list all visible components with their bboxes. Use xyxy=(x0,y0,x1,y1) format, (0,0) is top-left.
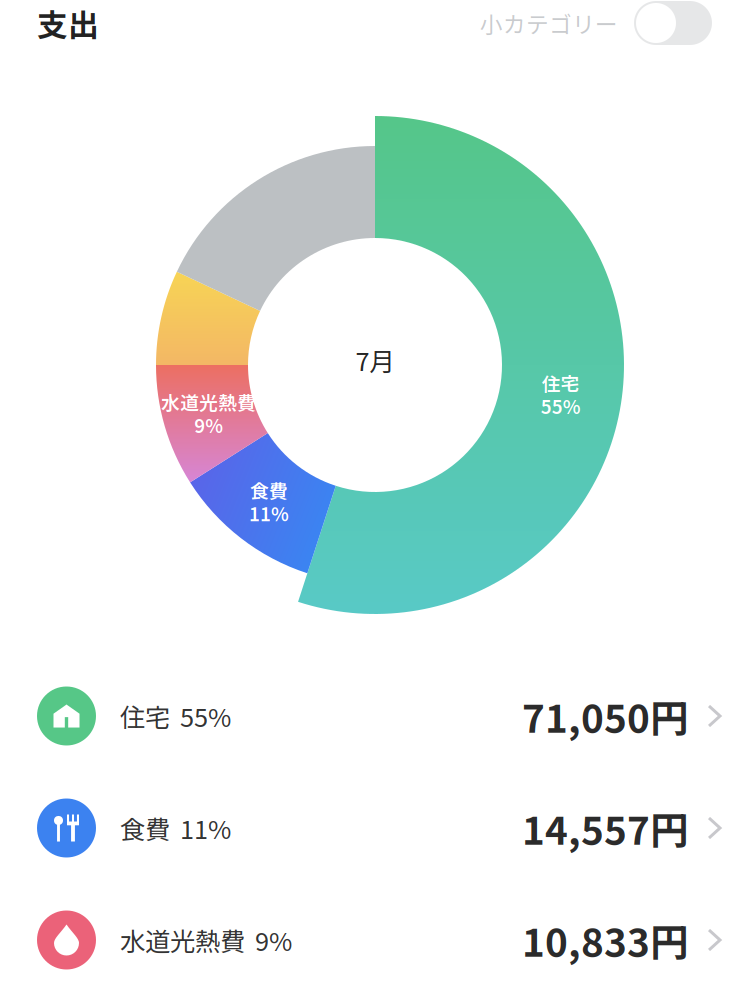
button[interactable]: 水道光熱費 xyxy=(0,884,750,985)
staticText: 住宅 xyxy=(542,369,580,396)
staticText: 11% xyxy=(249,500,289,527)
staticText: 食費 xyxy=(250,477,288,504)
staticText: 71,050円 xyxy=(522,688,689,744)
button[interactable]: 住宅 xyxy=(0,660,750,772)
staticText: 住宅 xyxy=(120,698,170,734)
button[interactable]: 小カテゴリー xyxy=(634,1,712,45)
staticText: 水道光熱費 xyxy=(161,388,256,415)
staticText: 7月 xyxy=(355,342,394,378)
staticText: 10,833円 xyxy=(522,912,689,968)
staticText: 55% xyxy=(541,392,581,419)
staticText: 小カテゴリー xyxy=(480,7,618,39)
button[interactable]: 食費 xyxy=(0,772,750,884)
staticText: 食費 xyxy=(120,810,170,846)
staticText: 水道光熱費 xyxy=(120,922,245,958)
staticText: 9% xyxy=(194,411,223,438)
staticText: 55% xyxy=(180,698,231,734)
staticText: 14,557円 xyxy=(522,800,689,856)
staticText: 11% xyxy=(180,810,231,846)
staticText: 9% xyxy=(255,922,292,958)
staticText: 支出 xyxy=(37,1,99,45)
